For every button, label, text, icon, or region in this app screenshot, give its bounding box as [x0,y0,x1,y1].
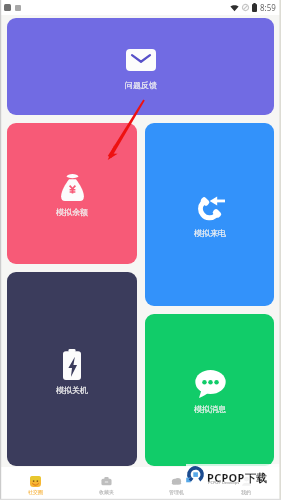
staticText: 问题反馈 [125,80,157,90]
staticText: 模拟余额 [56,207,88,217]
staticText: PCPOP Develops [208,480,240,485]
staticText: 8:59 [260,2,276,13]
button[interactable]: 管理机 [141,467,211,500]
staticText: 我的 [241,489,251,495]
staticText: 管理机 [169,489,184,495]
button[interactable]: 模拟余额 [7,123,137,264]
button[interactable]: 收藏夹 [71,467,141,500]
button[interactable]: 社交圈 [0,467,71,500]
button[interactable]: 我的 [211,467,281,500]
button[interactable]: 模拟关机 [7,272,137,466]
staticText: 模拟来电 [194,228,226,238]
staticText: PCPOP下载 [207,470,268,485]
button[interactable]: 问题反馈 [7,18,274,115]
staticText: 模拟消息 [194,404,226,414]
staticText: 模拟关机 [56,385,88,395]
staticText: 社交圈 [28,489,43,495]
button[interactable]: 模拟来电 [145,123,274,306]
staticText: 收藏夹 [99,489,114,495]
button[interactable]: 模拟消息 [145,314,274,466]
